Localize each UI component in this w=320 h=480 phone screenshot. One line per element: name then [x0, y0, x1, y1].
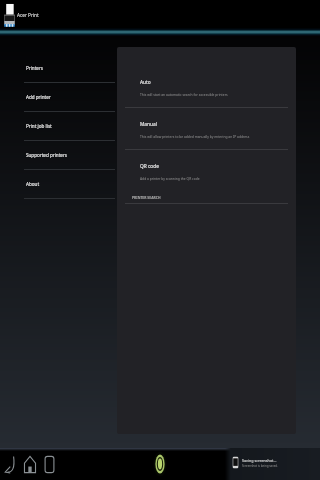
button[interactable]: Supported printers: [0, 141, 115, 170]
button[interactable]: About: [0, 170, 115, 199]
button[interactable]: Printers: [0, 54, 115, 83]
button[interactable]: Add printer: [0, 83, 115, 112]
staticText: Printers: [26, 65, 44, 71]
staticText: Acer Print: [17, 12, 39, 18]
other: Acer Print: [4, 3, 15, 27]
staticText: Saving screenshot...: [242, 458, 277, 463]
other: Screenshot notification: [232, 456, 239, 469]
staticText: PRINTER SEARCH: [132, 195, 161, 200]
button[interactable]: Screenshot capture: [150, 452, 170, 476]
staticText: Add a printer by scanning the QR code: [140, 176, 200, 180]
staticText: Supported printers: [26, 152, 68, 158]
staticText: This will start an automatic search for …: [140, 92, 228, 96]
button[interactable]: Auto: [117, 66, 296, 107]
staticText: Screenshot is being saved.: [242, 464, 278, 468]
staticText: Add printer: [26, 94, 51, 100]
staticText: QR code: [140, 163, 159, 170]
staticText: Manual: [140, 121, 157, 128]
staticText: Auto: [140, 79, 151, 86]
button[interactable]: Back: [4, 456, 16, 473]
button[interactable]: Manual: [117, 108, 296, 149]
button[interactable]: Home: [24, 456, 36, 473]
button[interactable]: Screenshot notification: [232, 456, 278, 469]
staticText: This will allow printers to be added man…: [140, 134, 250, 138]
button[interactable]: QR code: [117, 150, 296, 191]
staticText: Print job list: [26, 123, 52, 129]
button[interactable]: Recent apps: [44, 456, 55, 473]
button[interactable]: Print job list: [0, 112, 115, 141]
staticText: About: [26, 181, 40, 187]
